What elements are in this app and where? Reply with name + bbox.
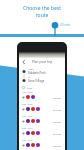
staticText: Baldwin Park: [28, 71, 46, 75]
staticText: 20 min: [60, 23, 71, 27]
button[interactable]: 8:00 - 8:50: [19, 102, 65, 114]
staticText: 8:30 - 9:15: [22, 139, 33, 142]
staticText: Plan your trip: [32, 60, 53, 64]
button[interactable]: Back: [22, 60, 26, 64]
staticText: Now: [27, 86, 33, 89]
staticText: 45 min: [53, 96, 62, 99]
staticText: 8:10 - 8:55: [22, 115, 33, 118]
staticText: 50 min: [53, 132, 62, 135]
button[interactable]: 8:20 - 9:10: [19, 126, 65, 138]
staticText: 45 min: [53, 144, 62, 147]
button[interactable]: 7:50 - 8:35: [19, 90, 65, 102]
button[interactable]: Now: [22, 85, 65, 90]
button[interactable]: 8:30 - 9:15: [19, 138, 65, 150]
staticText: To: [28, 76, 31, 79]
staticText: Choose the best route: [0, 5, 84, 18]
staticText: From: [28, 68, 34, 71]
button[interactable]: 8:10 - 8:55: [19, 114, 65, 126]
staticText: 50 min: [53, 108, 62, 111]
staticText: 45 min: [53, 120, 62, 123]
staticText: 8:20 - 9:10: [22, 127, 33, 130]
staticText: 8:00 - 8:50: [22, 103, 33, 106]
staticText: 7:50 - 8:35: [22, 91, 33, 94]
staticText: Rose Village: [28, 79, 45, 83]
